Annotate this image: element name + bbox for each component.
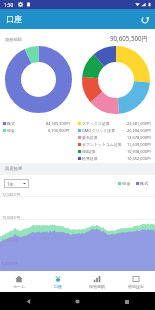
button[interactable]: Refresh xyxy=(137,12,152,27)
staticText: 資産総額 xyxy=(5,37,22,42)
staticText: 通知設定 xyxy=(128,284,144,289)
button[interactable]: 通知設定 xyxy=(116,272,155,292)
staticText: ホーム xyxy=(13,284,26,289)
staticText: 株式 xyxy=(7,121,15,126)
button[interactable]: Home xyxy=(73,297,82,306)
staticText: 7,550万円 xyxy=(2,238,19,243)
staticText: 現金 xyxy=(7,128,15,133)
staticText: 口座 xyxy=(6,14,22,24)
staticText: 10,068万円 xyxy=(2,215,21,220)
staticText: 5,032万円 xyxy=(2,261,19,266)
staticText: 1年 xyxy=(7,181,14,187)
staticText: 松井証券 xyxy=(82,156,98,161)
button[interactable]: 保有銘柄 xyxy=(77,272,116,292)
staticText: SBI証券 xyxy=(82,149,96,154)
staticText: 23,681,000円 xyxy=(127,121,151,126)
button[interactable]: ホーム xyxy=(0,272,38,292)
staticText: 12,586万円 xyxy=(2,192,21,197)
staticText: 90,605,500円 xyxy=(110,34,148,42)
staticText: 20,294,000円 xyxy=(127,128,151,133)
staticText: GMOクリック証券 xyxy=(82,128,116,133)
button[interactable]: Back xyxy=(24,297,33,306)
button[interactable]: Recents xyxy=(122,297,131,306)
staticText: 6,100,000円 xyxy=(48,128,70,133)
staticText: 保有銘柄 xyxy=(89,284,105,289)
staticText: 10,352,000円 xyxy=(127,156,151,161)
staticText: 楽天証券 xyxy=(82,135,98,140)
staticText: 10,938,000円 xyxy=(127,149,151,154)
staticText: マネックス証券 xyxy=(82,121,110,126)
staticText: セブンドットコム証券 xyxy=(82,142,122,147)
staticText: 資産推移 xyxy=(5,166,23,172)
staticText: 株式 xyxy=(140,181,149,186)
staticText: 口座 xyxy=(54,284,62,289)
button[interactable]: 1年 xyxy=(4,179,29,188)
staticText: 現金 xyxy=(122,181,131,186)
staticText: 84,505,500円 xyxy=(46,121,70,126)
button[interactable]: 口座 xyxy=(38,272,77,292)
staticText: 11,639,000円 xyxy=(127,142,151,147)
staticText: 13,678,000円 xyxy=(127,135,151,140)
staticText: 1:30 xyxy=(4,2,14,8)
